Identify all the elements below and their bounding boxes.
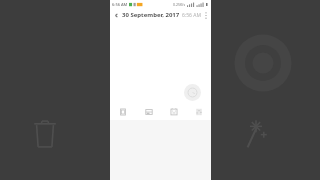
button[interactable]: Sticker	[161, 103, 186, 120]
button[interactable]: Auto enhance	[238, 118, 268, 150]
button[interactable]: Back	[110, 8, 122, 22]
button[interactable]: Loading	[184, 84, 201, 101]
button[interactable]: More options	[201, 8, 211, 22]
staticText: 6:56 AM	[182, 12, 201, 19]
button[interactable]: Filters	[136, 103, 161, 120]
button[interactable]: Delete	[30, 117, 60, 151]
button[interactable]: Crop	[110, 103, 136, 120]
staticText: 30 September, 2017	[122, 11, 180, 19]
staticText: 0.25K/s	[173, 2, 186, 7]
staticText: 6:56 AM	[112, 2, 128, 7]
button[interactable]: Adjust	[186, 103, 211, 120]
